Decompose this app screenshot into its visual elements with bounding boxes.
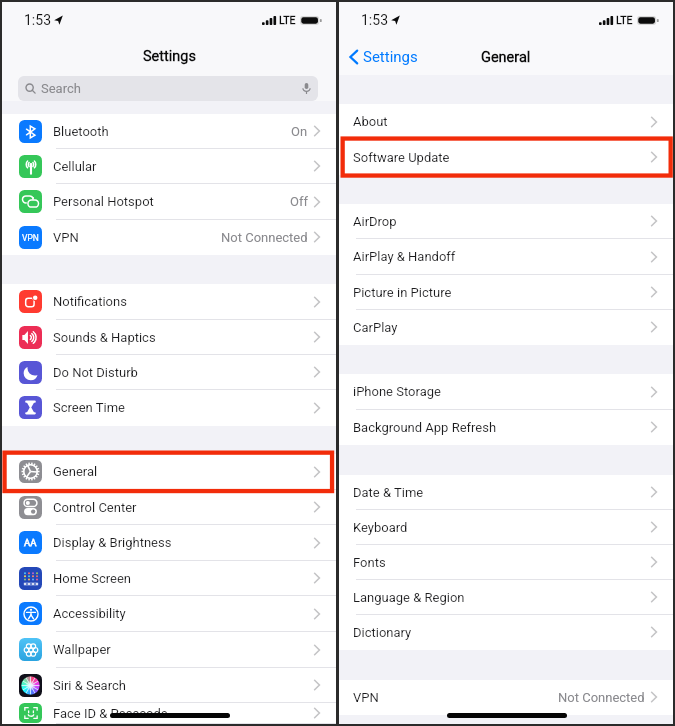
staticText: Notifications: [53, 294, 127, 309]
button[interactable]: Dictionary: [339, 615, 673, 650]
staticText: AA: [24, 537, 37, 548]
button[interactable]: AirDrop: [339, 204, 673, 239]
staticText: Fonts: [353, 555, 386, 570]
staticText: About: [353, 114, 388, 129]
staticText: Dictionary: [353, 625, 412, 640]
button[interactable]: Wallpaper: [2, 632, 336, 668]
staticText: AirPlay & Handoff: [353, 249, 456, 264]
staticText: VPN: [53, 230, 79, 245]
staticText: CarPlay: [353, 320, 398, 335]
button[interactable]: VPN: [339, 680, 673, 715]
staticText: Search: [41, 81, 81, 96]
button[interactable]: Cellular: [2, 149, 336, 184]
button[interactable]: Face ID & Passcode: [2, 703, 336, 724]
staticText: VPN: [22, 233, 39, 243]
button[interactable]: Personal Hotspot: [2, 184, 336, 220]
staticText: Sounds & Haptics: [53, 330, 156, 345]
button[interactable]: Settings: [349, 48, 418, 66]
staticText: Wallpaper: [53, 642, 111, 657]
button[interactable]: General: [2, 454, 336, 490]
staticText: Home Screen: [53, 571, 131, 586]
staticText: Language & Region: [353, 590, 465, 605]
button[interactable]: CarPlay: [339, 310, 673, 345]
staticText: General: [481, 49, 531, 66]
staticText: Face ID & Passcode: [53, 706, 168, 721]
button[interactable]: AA: [2, 525, 336, 561]
staticText: Cellular: [53, 159, 97, 174]
staticText: 1:53: [24, 12, 51, 28]
staticText: On: [291, 124, 308, 139]
staticText: Not Connected: [558, 690, 645, 705]
button[interactable]: Do Not Disturb: [2, 355, 336, 390]
staticText: AirDrop: [353, 214, 397, 229]
staticText: 1:53: [361, 12, 388, 28]
button[interactable]: AirPlay & Handoff: [339, 239, 673, 275]
staticText: Not Connected: [221, 230, 308, 245]
staticText: Personal Hotspot: [53, 194, 154, 209]
staticText: Siri & Search: [53, 678, 126, 693]
button[interactable]: Accessibility: [2, 596, 336, 632]
button[interactable]: Control Center: [2, 490, 336, 525]
button[interactable]: Screen Time: [2, 390, 336, 426]
button[interactable]: Software Update: [339, 140, 673, 175]
staticText: Software Update: [353, 150, 450, 165]
staticText: LTE: [279, 14, 296, 26]
button[interactable]: Bluetooth: [2, 114, 336, 149]
staticText: Picture in Picture: [353, 285, 452, 300]
staticText: Background App Refresh: [353, 420, 497, 435]
staticText: Settings: [363, 48, 418, 66]
staticText: Do Not Disturb: [53, 365, 138, 380]
button[interactable]: VPN: [2, 220, 336, 255]
staticText: Control Center: [53, 500, 137, 515]
staticText: Keyboard: [353, 520, 408, 535]
staticText: Bluetooth: [53, 124, 109, 139]
button[interactable]: Notifications: [2, 284, 336, 320]
staticText: LTE: [616, 14, 633, 26]
staticText: Screen Time: [53, 400, 125, 415]
staticText: iPhone Storage: [353, 384, 441, 399]
button[interactable]: Search: [18, 76, 318, 101]
button[interactable]: Home Screen: [2, 561, 336, 596]
button[interactable]: Language & Region: [339, 580, 673, 615]
staticText: General: [53, 464, 98, 479]
staticText: Display & Brightness: [53, 535, 172, 550]
staticText: Accessibility: [53, 606, 126, 621]
staticText: Date & Time: [353, 485, 424, 500]
staticText: VPN: [353, 690, 379, 705]
button[interactable]: Fonts: [339, 545, 673, 580]
button[interactable]: Background App Refresh: [339, 410, 673, 445]
button[interactable]: Date & Time: [339, 475, 673, 510]
button[interactable]: Picture in Picture: [339, 275, 673, 310]
staticText: Settings: [143, 48, 196, 65]
staticText: Off: [290, 194, 308, 209]
button[interactable]: Keyboard: [339, 510, 673, 545]
button[interactable]: Siri & Search: [2, 668, 336, 703]
button[interactable]: iPhone Storage: [339, 374, 673, 410]
button[interactable]: About: [339, 104, 673, 140]
button[interactable]: Sounds & Haptics: [2, 320, 336, 355]
